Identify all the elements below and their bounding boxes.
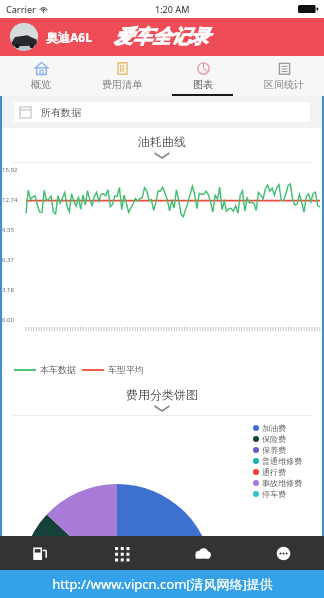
button[interactable]: 所有数据 <box>14 102 310 122</box>
button[interactable]: Cloud <box>162 536 243 570</box>
button[interactable]: Fuel <box>0 536 81 570</box>
button[interactable]: Apps <box>81 536 162 570</box>
staticText: 0.00 <box>2 316 14 324</box>
staticText: 普通维修费 <box>262 456 302 466</box>
button[interactable]: 费用清单 <box>81 56 162 96</box>
staticText: 12.74 <box>2 196 18 204</box>
staticText: http://www.vipcn.com[清风网络]提供 <box>52 575 273 593</box>
button[interactable]: 油耗曲线 <box>0 128 324 163</box>
staticText: 15.92 <box>2 166 18 174</box>
staticText: 6.37 <box>2 256 14 264</box>
staticText: 所有数据 <box>41 106 81 119</box>
staticText: 概览 <box>31 78 51 91</box>
staticText: 通行费 <box>262 467 286 477</box>
staticText: 图表 <box>193 78 213 91</box>
button[interactable]: 区间统计 <box>243 56 324 96</box>
staticText: Carrier <box>6 3 36 15</box>
staticText: 1:20 AM <box>155 3 190 15</box>
staticText: 加油费 <box>262 423 286 433</box>
button[interactable]: 概览 <box>0 56 81 96</box>
staticText: 保险费 <box>262 434 286 444</box>
staticText: 3.18 <box>2 286 14 294</box>
staticText: 本车数据 <box>40 364 76 375</box>
staticText: 9.55 <box>2 226 14 234</box>
staticText: 费用分类饼图 <box>126 387 198 402</box>
button[interactable]: Vehicle avatar <box>10 23 38 51</box>
staticText: 油耗曲线 <box>138 134 186 149</box>
staticText: 区间统计 <box>264 78 304 91</box>
staticText: 费用清单 <box>102 78 142 91</box>
staticText: 奥迪A6L <box>46 29 92 45</box>
staticText: 爱车全记录 <box>114 25 209 49</box>
staticText: 停车费 <box>262 489 286 499</box>
button[interactable]: More <box>243 536 324 570</box>
staticText: 车型平均 <box>108 364 144 375</box>
button[interactable]: 费用分类饼图 <box>0 381 324 416</box>
staticText: 保养费 <box>262 445 286 455</box>
staticText: 事故维修费 <box>262 478 302 488</box>
button[interactable]: 图表 <box>162 56 243 96</box>
